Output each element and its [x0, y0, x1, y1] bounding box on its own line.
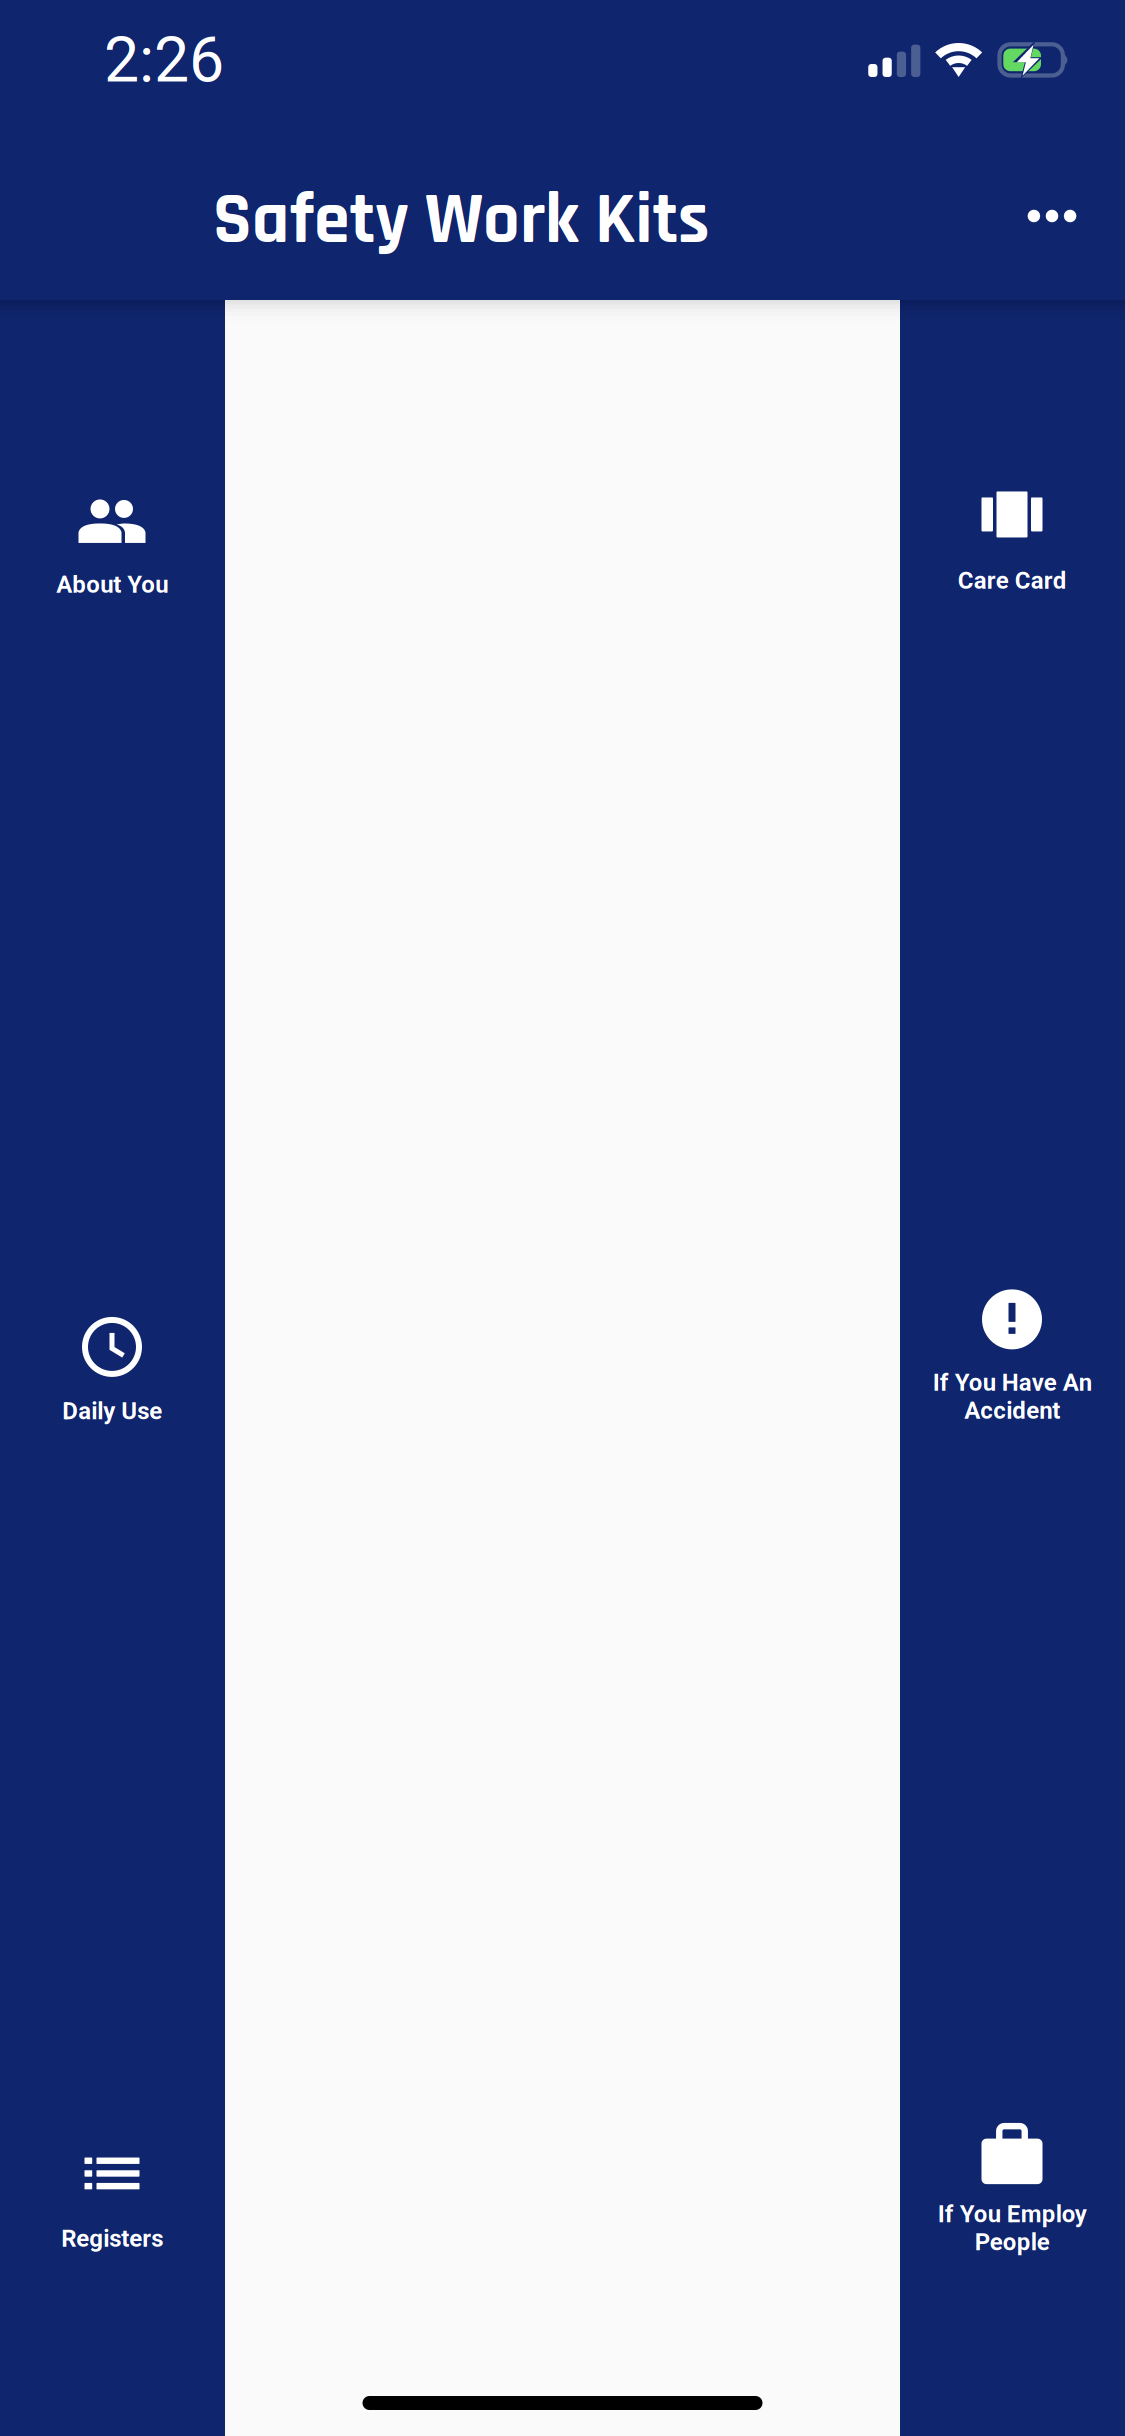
staticText: Safety Work Kits: [213, 175, 710, 267]
staticText: If You Employ People: [937, 2200, 1086, 2256]
staticText: Care Card: [957, 566, 1066, 594]
button[interactable]: Daily Use: [0, 1317, 224, 1425]
button[interactable]: Registers: [0, 2157, 224, 2252]
staticText: Daily Use: [62, 1397, 162, 1425]
button[interactable]: About You: [0, 499, 224, 598]
staticText: About You: [56, 570, 168, 598]
button[interactable]: More options: [992, 150, 1112, 270]
button[interactable]: If You Employ People: [899, 2120, 1124, 2256]
staticText: Registers: [61, 2224, 163, 2252]
staticText: 2:26: [104, 23, 224, 97]
button[interactable]: If You Have An Accident: [899, 1289, 1124, 1425]
staticText: If You Have An Accident: [932, 1368, 1091, 1425]
button[interactable]: Care Card: [899, 491, 1124, 594]
